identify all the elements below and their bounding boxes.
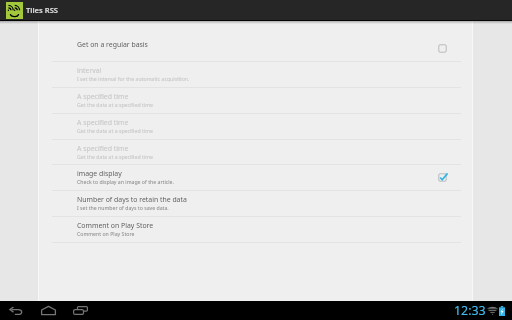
staticText: A specified time [77, 144, 129, 153]
button[interactable]: Recent apps [68, 301, 92, 320]
button[interactable]: image display [39, 164, 472, 190]
staticText: Comment on Play Store [77, 230, 135, 237]
staticText: A specified time [77, 92, 129, 101]
button[interactable]: Home [36, 301, 60, 320]
button[interactable]: Number of days to retain the data [39, 190, 472, 216]
staticText: Get on a regular basis [77, 40, 148, 49]
staticText: Get the data at a specified time [77, 101, 153, 108]
button[interactable]: Get on a regular basis [39, 35, 472, 61]
button[interactable]: interval [39, 61, 472, 87]
staticText: image display [77, 169, 122, 178]
button[interactable]: A specified time [39, 113, 472, 139]
staticText: Get the data at a specified time [77, 153, 153, 160]
button[interactable]: A specified time [39, 87, 472, 113]
button[interactable]: Back [4, 301, 28, 320]
staticText: Number of days to retain the data [77, 195, 187, 204]
staticText: Comment on Play Store [77, 221, 154, 230]
staticText: 12:33 [454, 302, 486, 319]
button[interactable]: A specified time [39, 139, 472, 165]
staticText: interval [77, 66, 102, 75]
staticText: Check to display an image of the article… [77, 178, 174, 185]
staticText: Tiles RSS [26, 5, 59, 15]
button[interactable]: Comment on Play Store [39, 216, 472, 242]
staticText: Get the data at a specified time [77, 127, 153, 134]
staticText: A specified time [77, 118, 129, 127]
staticText: I set the number of days to save data. [77, 204, 169, 211]
staticText: I set the interval for the automatic acq… [77, 75, 190, 82]
